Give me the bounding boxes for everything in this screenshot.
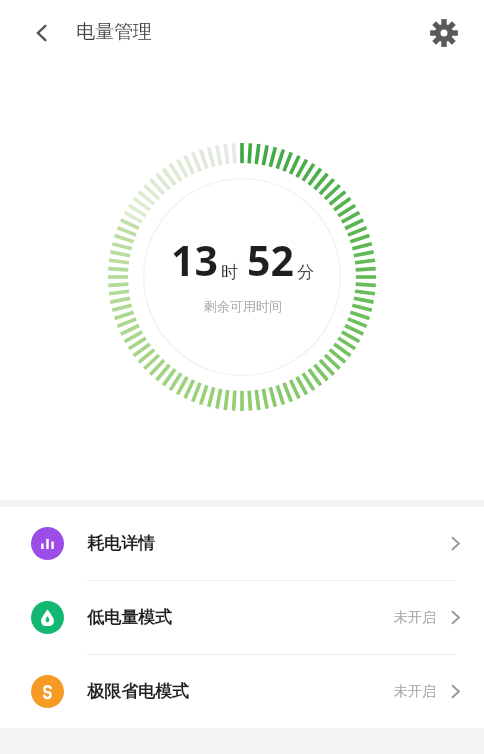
staticText: 电量管理 — [76, 20, 152, 44]
button[interactable]: 耗电详情 — [0, 507, 484, 581]
staticText: 13 — [171, 232, 218, 288]
button[interactable]: 低电量模式 — [0, 581, 484, 655]
staticText: 时 — [221, 262, 238, 283]
staticText: 低电量模式 — [87, 607, 172, 628]
button[interactable]: 极限省电模式 — [0, 655, 484, 728]
staticText: 极限省电模式 — [87, 681, 189, 702]
staticText: 分 — [297, 262, 314, 283]
staticText: 剩余可用时间 — [204, 298, 282, 314]
staticText: 耗电详情 — [87, 533, 155, 554]
button[interactable]: Back — [20, 11, 64, 55]
staticText: 52 — [247, 232, 294, 288]
button[interactable]: Settings — [422, 11, 466, 55]
staticText: 未开启 — [394, 683, 436, 701]
staticText: 未开启 — [394, 609, 436, 627]
